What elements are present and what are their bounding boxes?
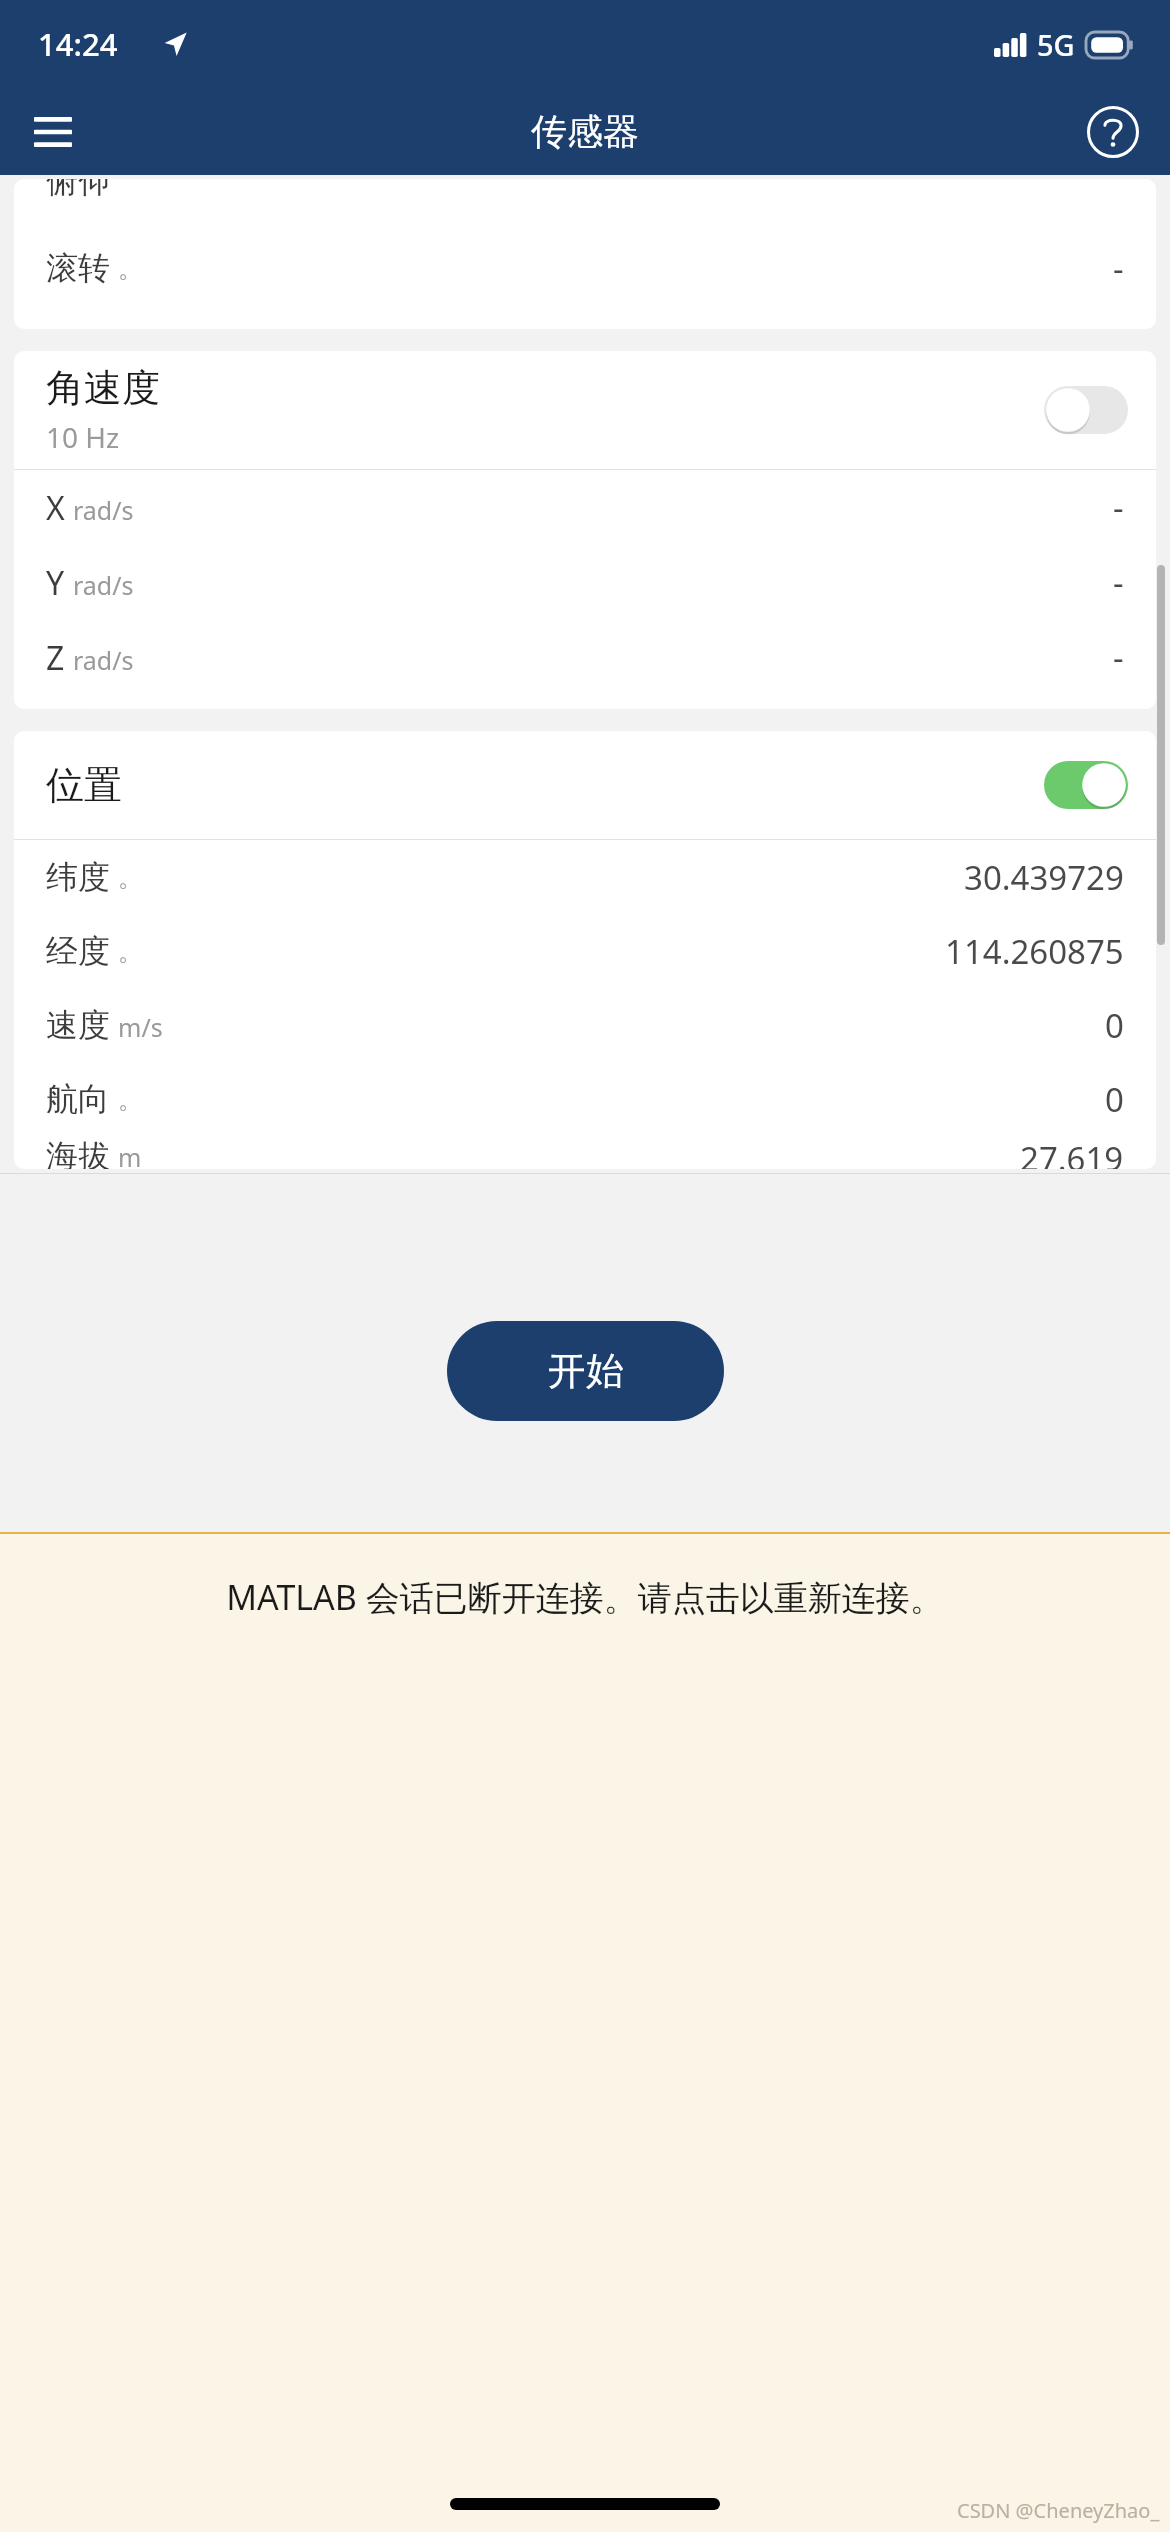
button[interactable]: Y [14,545,1156,620]
staticText: CSDN @CheneyZhao_ [957,2497,1160,2524]
staticText: 角速度 [46,364,160,412]
button[interactable]: Toggle on [1044,761,1128,809]
button[interactable]: Z [14,620,1156,695]
staticText: 。 [118,253,143,284]
staticText: rad/s [73,493,134,527]
staticText: 27.619 [1020,1136,1124,1169]
button[interactable]: 滚转 [14,225,1156,311]
staticText: rad/s [73,568,134,602]
staticText: X [46,486,65,530]
staticText: m [118,1140,142,1169]
button[interactable]: Toggle off [1044,386,1128,434]
staticText: 位置 [46,761,1044,809]
staticText: - [1113,246,1124,291]
button[interactable]: 开始 [447,1321,724,1421]
button[interactable]: Help [1080,99,1146,165]
button[interactable]: 纬度 [14,840,1156,914]
button[interactable]: X [14,470,1156,545]
staticText: 0 [1105,1003,1124,1048]
staticText: 14:24 [38,23,118,65]
button[interactable]: 速度 [14,988,1156,1062]
staticText: 30.439729 [964,855,1124,900]
staticText: - [1113,485,1124,530]
staticText: 速度 [46,1005,110,1045]
staticText: - [1113,560,1124,605]
staticText: 0 [1105,1077,1124,1122]
staticText: 传感器 [531,109,639,154]
staticText: 海拔 [46,1136,110,1169]
staticText: 5G [1037,25,1075,64]
staticText: 。 [118,1084,143,1115]
staticText: 开始 [548,1347,624,1395]
staticText: - [1113,635,1124,680]
staticText: 经度 [46,931,110,971]
staticText: Y [46,561,65,605]
staticText: 俯仰 [46,179,110,201]
staticText: 。 [118,936,143,967]
staticText: 纬度 [46,857,110,897]
button[interactable]: 位置 [14,731,1156,839]
staticText: 114.260875 [945,929,1124,974]
staticText: 10 Hz [46,418,120,456]
button[interactable]: MATLAB 会话已断开连接。请点击以重新连接。 [0,1574,1170,1620]
button[interactable]: 海拔 [14,1136,1156,1169]
staticText: 航向 [46,1079,110,1119]
button[interactable]: 角速度 [14,351,1156,469]
button[interactable]: Menu [22,101,84,163]
button[interactable]: 航向 [14,1062,1156,1136]
staticText: 滚转 [46,248,110,288]
staticText: m/s [118,1010,163,1044]
staticText: Z [46,636,65,680]
staticText: rad/s [73,643,134,677]
button[interactable]: 经度 [14,914,1156,988]
staticText: 。 [118,862,143,893]
